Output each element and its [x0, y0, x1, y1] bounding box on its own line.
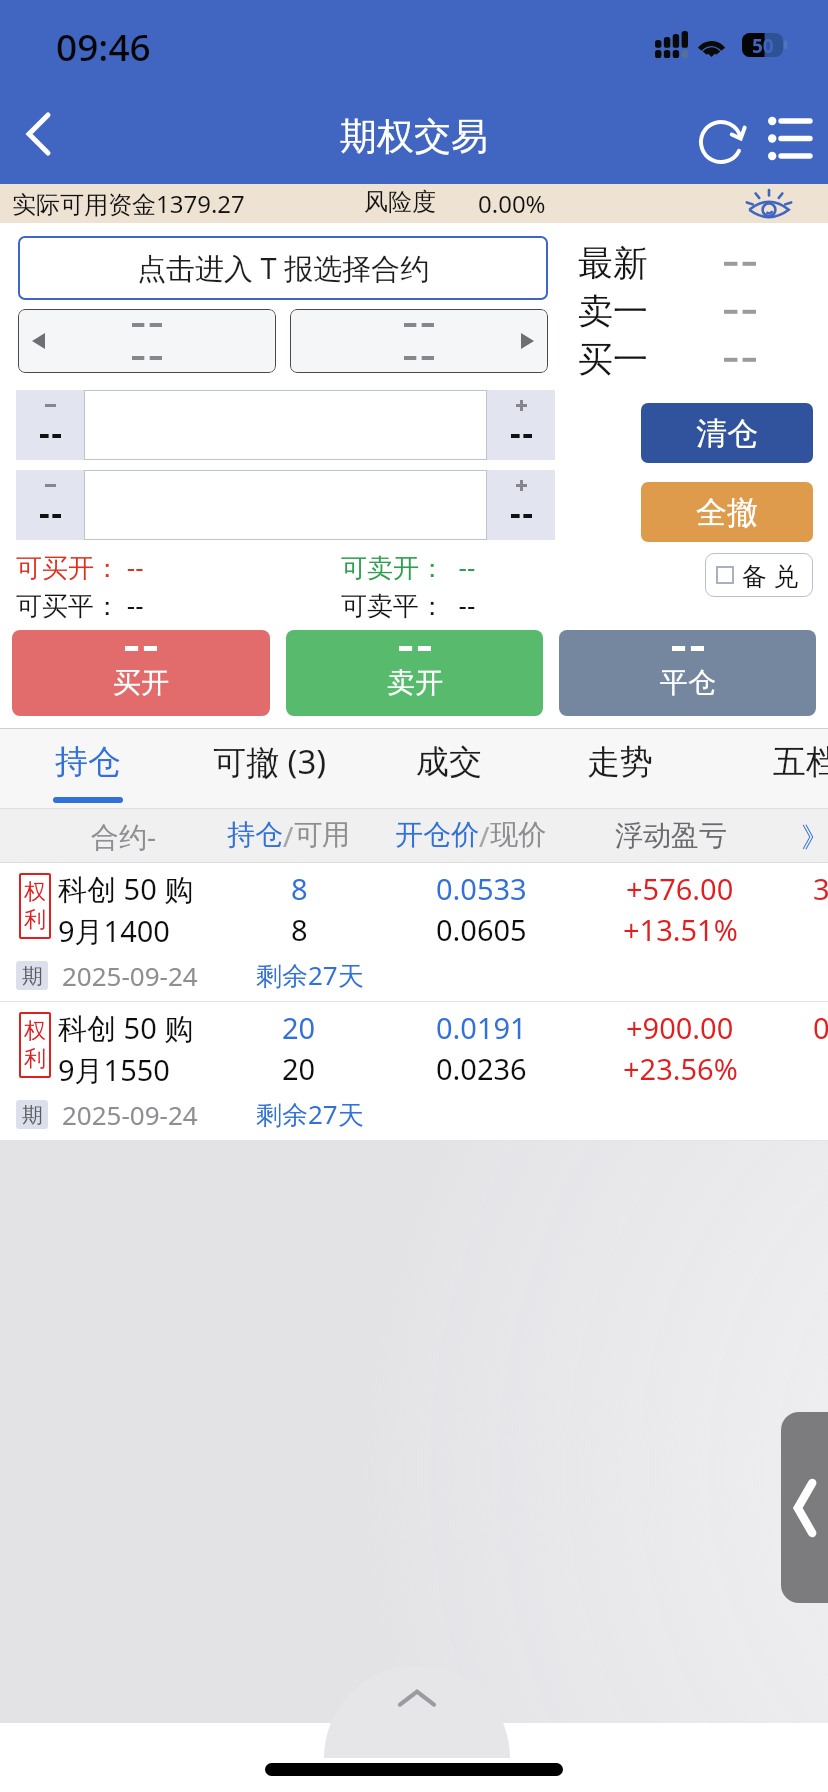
staticText: 09:46	[56, 21, 151, 71]
staticText: 20	[282, 1049, 316, 1088]
staticText: 五档	[773, 741, 828, 783]
staticText: 权	[24, 878, 46, 906]
staticText: 持仓	[227, 817, 283, 852]
button[interactable]: 全撤	[641, 482, 813, 542]
button[interactable]: 成交	[364, 726, 534, 805]
button[interactable]: 五档	[745, 726, 828, 805]
staticText: 2025-09-24	[62, 958, 198, 993]
staticText: 0.0191	[436, 1008, 527, 1047]
staticText: 备 兑	[742, 558, 799, 592]
staticText: 2025-09-24	[62, 1097, 198, 1132]
button[interactable]	[16, 390, 84, 460]
button[interactable]: Refresh	[679, 92, 763, 192]
staticText: 剩余27天	[256, 957, 364, 993]
button[interactable]: 权	[0, 1002, 828, 1141]
staticText: 9月1400	[58, 911, 170, 951]
staticText: 可撤 (3)	[213, 739, 327, 784]
staticText: 9月1550	[58, 1050, 170, 1090]
staticText: 0.00%	[478, 187, 546, 220]
staticText: 权	[24, 1017, 46, 1045]
staticText: 点击进入 T 报选择合约	[137, 248, 430, 288]
button[interactable]	[16, 470, 84, 540]
staticText: 买一	[578, 337, 648, 381]
staticText: 卖一	[578, 289, 648, 333]
staticText: 买开	[113, 665, 169, 700]
staticText: /	[283, 817, 294, 855]
button[interactable]: 可撤 (3)	[176, 726, 364, 805]
button[interactable]: Toggle visibility	[746, 188, 792, 220]
staticText: 0.0533	[436, 869, 527, 908]
staticText: +900.00	[626, 1008, 734, 1047]
button[interactable]: 权	[0, 863, 828, 1002]
button[interactable]	[487, 470, 555, 540]
staticText: 全撤	[696, 493, 758, 532]
staticText: 可买平： --	[16, 587, 144, 623]
staticText: 》D	[801, 817, 828, 855]
staticText: 平仓	[660, 665, 716, 700]
button[interactable]	[18, 309, 276, 373]
staticText: 8	[291, 910, 308, 949]
staticText: 风险度	[364, 187, 436, 217]
staticText: 科创 50 购	[58, 869, 194, 909]
staticText: 期	[22, 1102, 43, 1128]
staticText: 卖开	[387, 665, 443, 700]
staticText: 开仓价	[395, 817, 479, 852]
button[interactable]: 买开	[12, 630, 270, 716]
button[interactable]	[487, 390, 555, 460]
staticText: /	[479, 817, 490, 855]
staticText: 可用	[294, 817, 350, 852]
staticText: 最新	[578, 241, 648, 285]
button[interactable]: 清仓	[641, 403, 813, 463]
button[interactable]: 卖开	[286, 630, 543, 716]
staticText: 50	[752, 33, 774, 57]
button[interactable]: Menu	[745, 87, 828, 187]
staticText: +23.56%	[623, 1049, 738, 1088]
staticText: 实际可用资金1379.27	[12, 187, 245, 220]
staticText: 期权交易	[340, 113, 488, 160]
staticText: 3	[813, 869, 828, 908]
staticText: 可买开： --	[16, 549, 144, 585]
staticText: +13.51%	[623, 910, 738, 949]
button[interactable]: 点击进入 T 报选择合约	[18, 236, 548, 300]
button[interactable]: Back	[0, 84, 74, 184]
button[interactable]: 备 兑	[705, 553, 813, 597]
staticText: 期	[22, 963, 43, 989]
staticText: +576.00	[626, 869, 734, 908]
staticText: 8	[291, 869, 308, 908]
button[interactable]	[290, 309, 548, 373]
button[interactable]: 持仓	[0, 726, 176, 805]
button[interactable]: Open side panel	[781, 1412, 828, 1603]
staticText: 利	[24, 1045, 46, 1073]
button[interactable]: 走势	[534, 726, 706, 805]
staticText: 0.0605	[436, 910, 527, 949]
staticText: 清仓	[696, 414, 758, 453]
staticText: 走势	[587, 741, 653, 783]
staticText: 利	[24, 906, 46, 934]
staticText: 成交	[416, 741, 482, 783]
staticText: 可卖开： --	[341, 549, 476, 585]
staticText: 0	[813, 1008, 828, 1047]
staticText: 合约-	[91, 817, 157, 855]
button[interactable]: Expand	[324, 1665, 510, 1723]
staticText: 科创 50 购	[58, 1008, 194, 1048]
button[interactable]: 平仓	[559, 630, 816, 716]
staticText: 持仓	[55, 741, 121, 783]
staticText: 20	[282, 1008, 316, 1047]
staticText: 现价	[490, 817, 546, 852]
staticText: 可卖平： --	[341, 587, 476, 623]
staticText: 0.0236	[436, 1049, 527, 1088]
staticText: 浮动盈亏	[615, 818, 727, 853]
staticText: 剩余27天	[256, 1096, 364, 1132]
